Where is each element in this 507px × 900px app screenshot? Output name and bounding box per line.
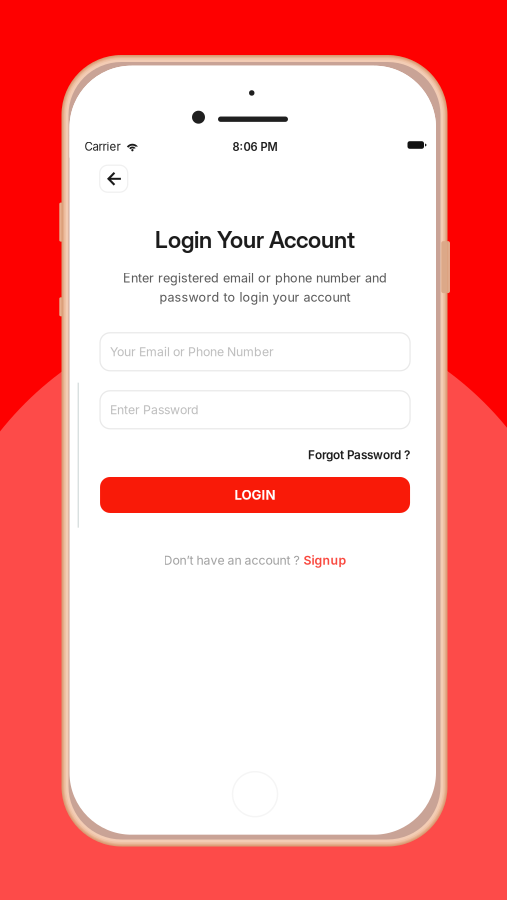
staticText: Your Email or Phone Number — [110, 344, 274, 359]
button[interactable]: Don’t have an account ? — [164, 553, 347, 568]
staticText: Carrier — [84, 140, 120, 154]
button[interactable]: LOGIN — [100, 477, 410, 513]
staticText: Forgot Password ? — [308, 448, 410, 462]
staticText: Don’t have an account ? — [164, 553, 300, 568]
button[interactable]: Forgot Password ? — [308, 448, 410, 462]
button[interactable]: Back — [100, 165, 128, 192]
staticText: Signup — [304, 553, 347, 568]
staticText: Enter registered email or phone number a… — [123, 270, 387, 286]
staticText: LOGIN — [235, 487, 276, 503]
staticText: password to login your account — [160, 290, 351, 305]
staticText: Login Your Account — [155, 226, 355, 253]
staticText: Enter Password — [110, 402, 199, 417]
staticText: 8:06 PM — [233, 140, 278, 154]
